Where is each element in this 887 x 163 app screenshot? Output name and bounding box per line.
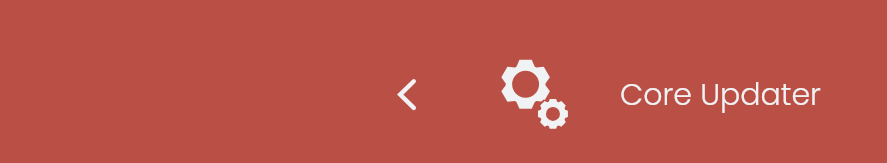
staticText: Core Updater (620, 74, 821, 116)
button[interactable]: Navigate up (382, 71, 430, 119)
